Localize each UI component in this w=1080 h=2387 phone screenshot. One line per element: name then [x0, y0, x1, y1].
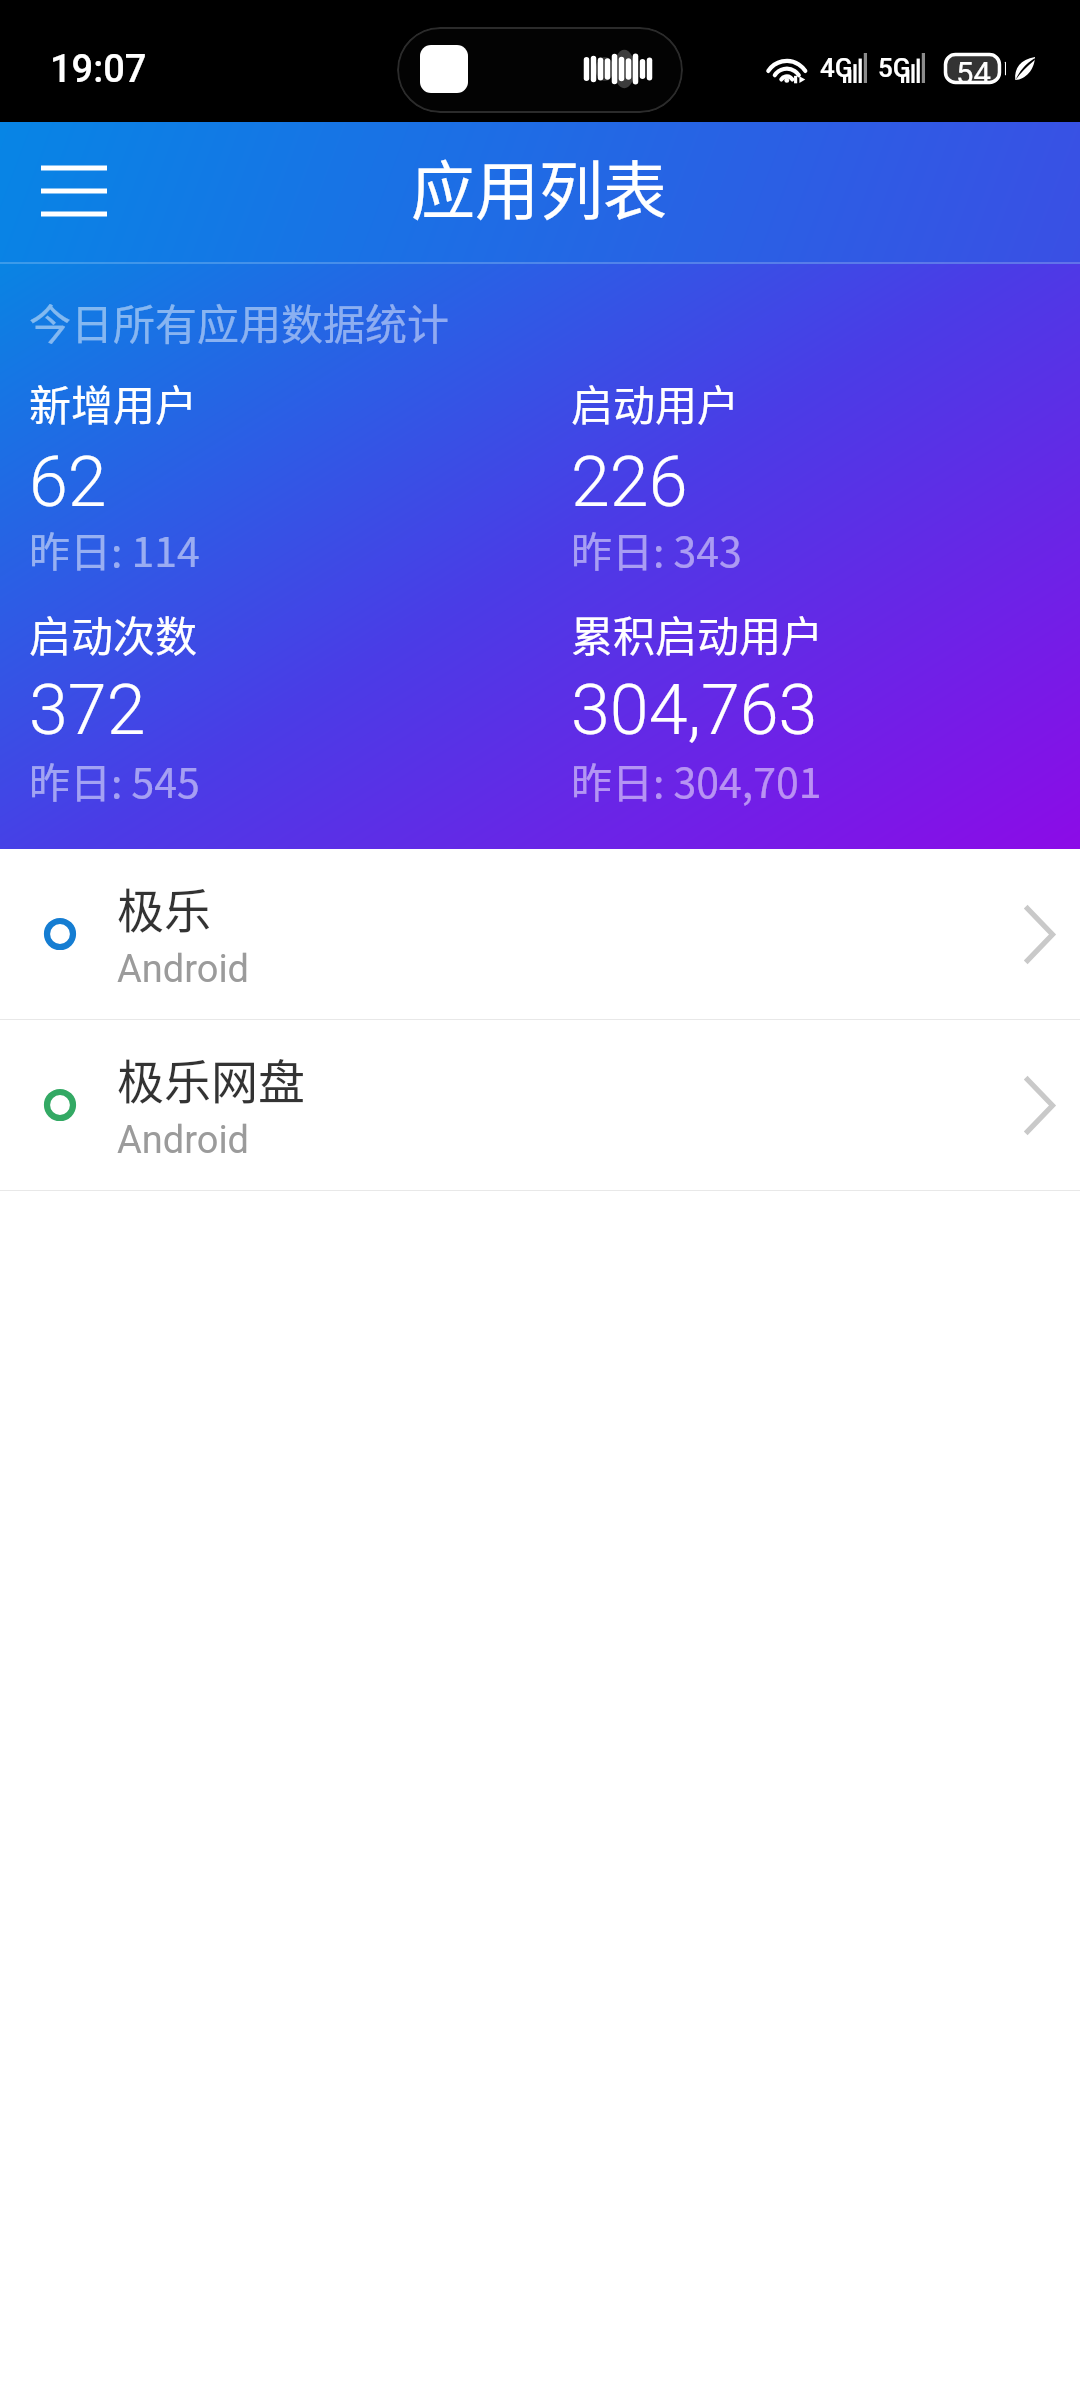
- staticText: 应用列表: [411, 140, 667, 233]
- staticText: Android: [117, 947, 250, 992]
- staticText: 19:07: [50, 47, 147, 92]
- staticText: Android: [117, 1118, 250, 1163]
- staticText: 54: [956, 55, 991, 86]
- staticText: 昨日: 545: [29, 750, 200, 809]
- staticText: 4G: [820, 53, 853, 83]
- button[interactable]: 极乐网盘: [0, 1020, 1080, 1190]
- staticText: 累积启动用户: [571, 603, 824, 664]
- staticText: 极乐网盘: [117, 1044, 305, 1112]
- staticText: 启动用户: [571, 372, 740, 433]
- staticText: 今日所有应用数据统计: [29, 291, 450, 352]
- staticText: 226: [571, 441, 688, 523]
- staticText: 62: [29, 441, 107, 523]
- button[interactable]: Menu: [14, 131, 134, 251]
- staticText: 昨日: 304,701: [571, 750, 822, 809]
- staticText: 昨日: 343: [571, 519, 742, 578]
- staticText: 启动次数: [29, 603, 198, 664]
- staticText: 5G: [878, 53, 911, 83]
- staticText: 372: [29, 669, 146, 751]
- button[interactable]: 极乐: [0, 849, 1080, 1019]
- staticText: 极乐: [117, 873, 211, 941]
- staticText: 304,763: [571, 669, 818, 751]
- staticText: 新增用户: [29, 372, 198, 433]
- staticText: 昨日: 114: [29, 519, 200, 578]
